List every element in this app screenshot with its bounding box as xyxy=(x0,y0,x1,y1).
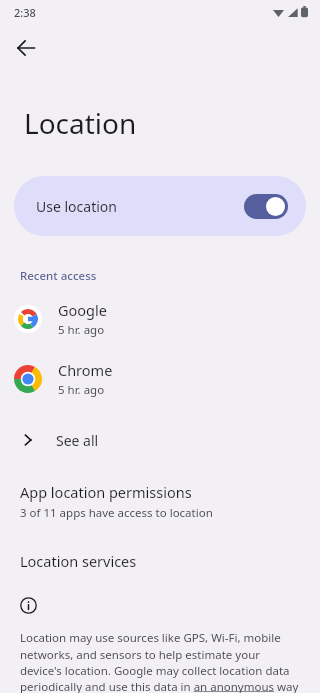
staticText: 5 hr. ago xyxy=(58,322,105,338)
staticText: 5 hr. ago xyxy=(58,382,105,398)
button[interactable]: App location permissions xyxy=(0,480,320,523)
other: Information xyxy=(20,597,37,614)
staticText: 3 of 11 apps have access to location xyxy=(20,505,213,521)
staticText: App location permissions xyxy=(20,482,192,502)
button[interactable]: Use location xyxy=(14,176,306,236)
staticText: Location xyxy=(24,104,137,142)
staticText: 2:38 xyxy=(14,5,36,20)
staticText: Google xyxy=(58,300,107,320)
staticText: Use location xyxy=(36,197,244,216)
staticText: Recent access xyxy=(20,268,97,284)
staticText: See all xyxy=(56,431,99,450)
staticText: Location services xyxy=(20,551,137,571)
button[interactable]: Back xyxy=(6,28,46,68)
staticText: Chrome xyxy=(58,360,113,380)
button[interactable]: Google xyxy=(0,298,320,340)
button[interactable]: See all xyxy=(0,422,320,458)
button[interactable]: Location services xyxy=(0,549,320,573)
staticText: Location may use sources like GPS, Wi-Fi… xyxy=(20,630,304,693)
button[interactable]: Chrome xyxy=(0,358,320,400)
